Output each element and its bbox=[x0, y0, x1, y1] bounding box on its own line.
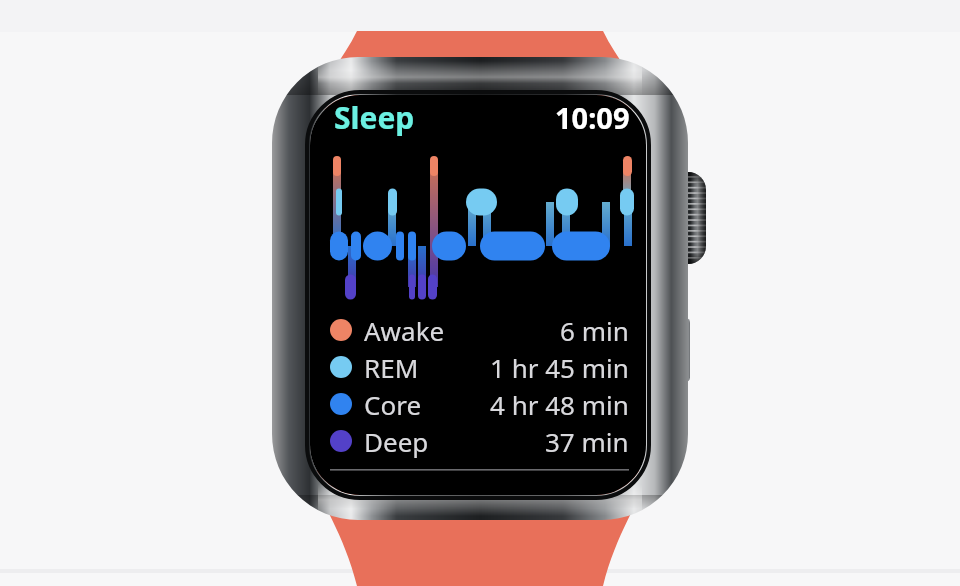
button[interactable]: Apple Watch showing Sleep app bbox=[0, 0, 960, 586]
